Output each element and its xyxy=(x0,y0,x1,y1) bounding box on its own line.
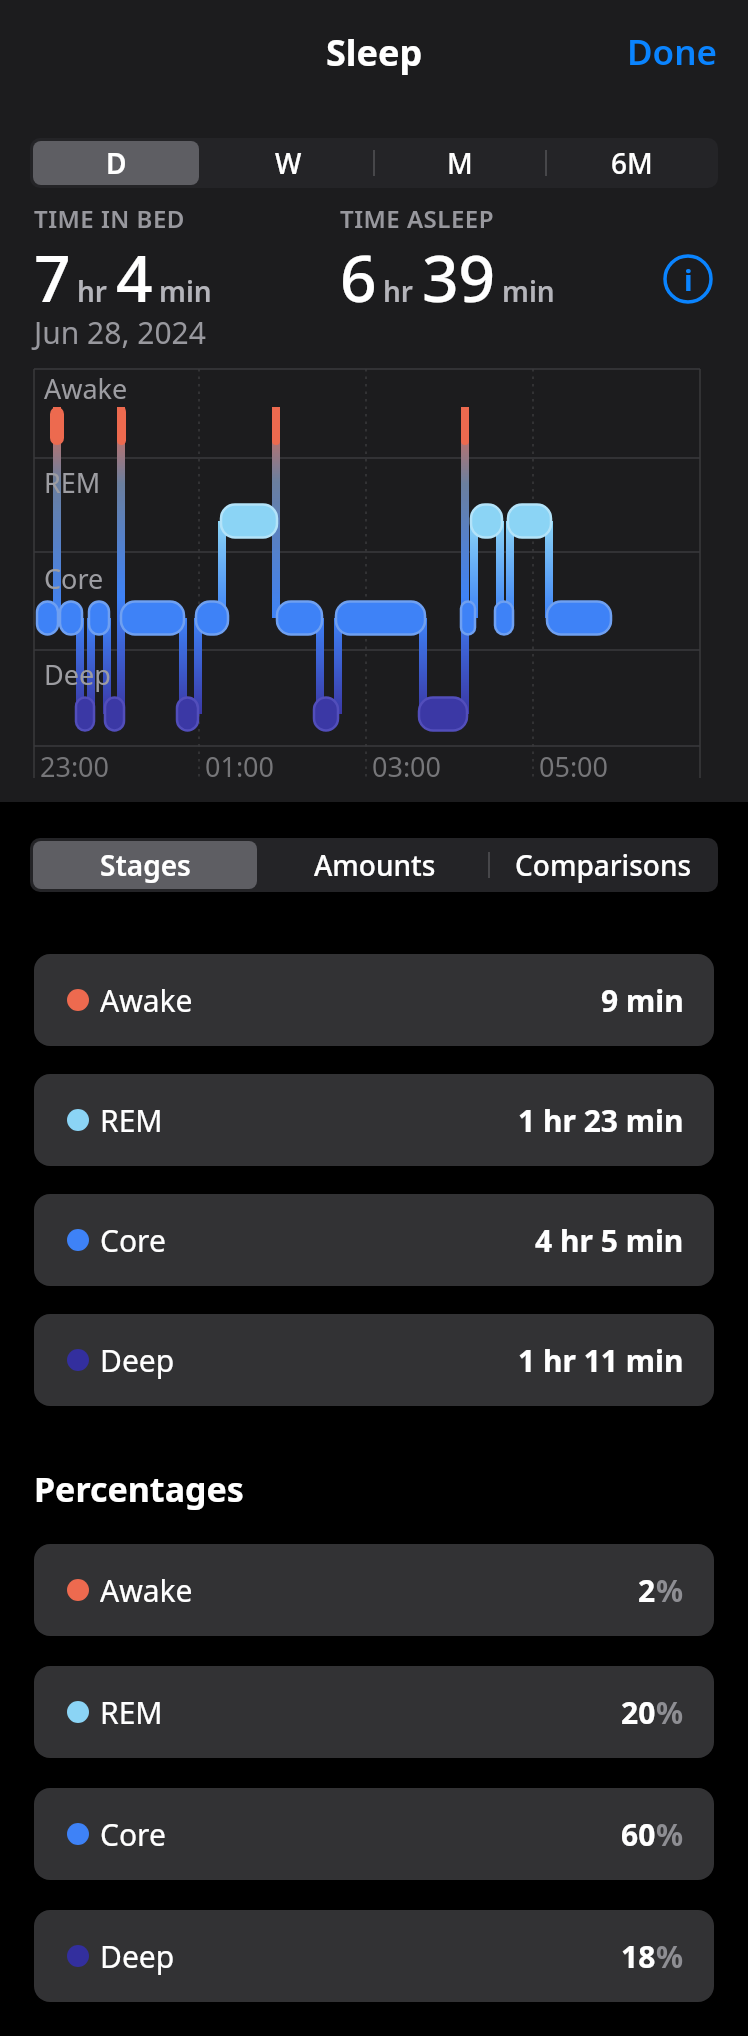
button[interactable]: i xyxy=(663,254,713,304)
staticText: REM xyxy=(44,464,101,501)
staticText: W xyxy=(275,144,302,182)
staticText: 4 xyxy=(116,234,153,321)
button[interactable]: Awake xyxy=(34,1544,714,1636)
staticText: Done xyxy=(627,28,718,76)
staticText: 1 hr 23 min xyxy=(518,1100,684,1141)
button[interactable]: Amounts xyxy=(263,841,486,889)
staticText: % xyxy=(656,1570,684,1611)
staticText: D xyxy=(106,144,127,182)
staticText: TIME IN BED xyxy=(34,202,185,235)
button[interactable]: Comparisons xyxy=(492,841,715,889)
staticText: 6 xyxy=(340,234,377,321)
staticText: 23:00 xyxy=(40,748,110,785)
staticText: i xyxy=(684,260,693,299)
staticText: 1 hr 11 min xyxy=(518,1340,684,1381)
button[interactable]: M xyxy=(377,141,543,185)
button[interactable]: Deep xyxy=(34,1910,714,2002)
staticText: Awake xyxy=(100,980,193,1021)
button[interactable]: Core xyxy=(34,1788,714,1880)
staticText: 18 xyxy=(621,1936,656,1977)
staticText: % xyxy=(656,1692,684,1733)
staticText: hr xyxy=(383,272,414,310)
staticText: Core xyxy=(100,1814,166,1855)
staticText: Awake xyxy=(44,370,128,407)
staticText: REM xyxy=(100,1100,163,1141)
staticText: 60 xyxy=(621,1814,656,1855)
button[interactable]: D xyxy=(33,141,199,185)
staticText: Deep xyxy=(100,1340,175,1381)
staticText: 6M xyxy=(611,144,653,182)
staticText: Core xyxy=(44,560,104,597)
staticText: 7 xyxy=(34,234,71,321)
staticText: TIME ASLEEP xyxy=(340,202,494,235)
staticText: min xyxy=(159,272,212,310)
staticText: % xyxy=(656,1814,684,1855)
staticText: Percentages xyxy=(34,1466,244,1512)
staticText: % xyxy=(656,1936,684,1977)
staticText: Core xyxy=(100,1220,166,1261)
staticText: 01:00 xyxy=(205,748,275,785)
staticText: Deep xyxy=(100,1936,175,1977)
staticText: Amounts xyxy=(314,846,436,884)
button[interactable]: REM xyxy=(34,1074,714,1166)
button[interactable]: W xyxy=(205,141,371,185)
button[interactable]: REM xyxy=(34,1666,714,1758)
staticText: Comparisons xyxy=(515,846,692,884)
staticText: 05:00 xyxy=(539,748,609,785)
staticText: hr xyxy=(77,272,108,310)
staticText: 39 xyxy=(422,234,496,321)
button[interactable]: 6M xyxy=(549,141,715,185)
button[interactable]: Core xyxy=(34,1194,714,1286)
button[interactable]: Done xyxy=(627,28,718,76)
staticText: Sleep xyxy=(326,28,423,77)
staticText: 2 xyxy=(638,1570,656,1611)
staticText: 9 min xyxy=(601,980,684,1021)
button[interactable]: Stages xyxy=(33,841,257,889)
staticText: Awake xyxy=(100,1570,193,1611)
staticText: 4 hr 5 min xyxy=(535,1220,684,1261)
staticText: M xyxy=(447,144,473,182)
button[interactable]: Deep xyxy=(34,1314,714,1406)
staticText: Stages xyxy=(100,846,191,884)
button[interactable]: Awake xyxy=(34,954,714,1046)
staticText: min xyxy=(502,272,555,310)
staticText: Deep xyxy=(44,656,111,693)
staticText: 03:00 xyxy=(372,748,442,785)
staticText: Jun 28, 2024 xyxy=(34,312,206,353)
staticText: 20 xyxy=(621,1692,656,1733)
staticText: REM xyxy=(100,1692,163,1733)
